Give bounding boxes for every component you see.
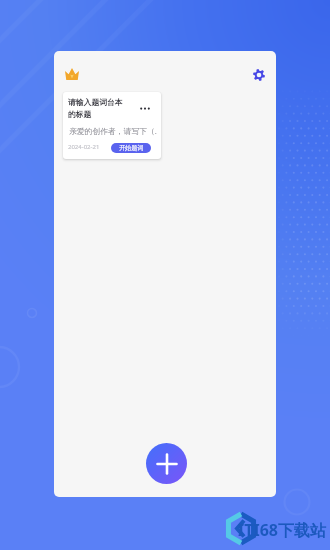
button[interactable]: Add script xyxy=(146,443,187,484)
button[interactable]: Settings xyxy=(248,64,269,85)
button[interactable]: More options xyxy=(137,102,153,114)
staticText: 2024-02-21 xyxy=(68,143,100,151)
button[interactable]: VIP xyxy=(61,64,82,84)
button[interactable]: 请输入题词台本的标题 xyxy=(63,92,161,159)
staticText: 亲爱的创作者，请写下（... xyxy=(69,126,157,137)
button[interactable]: 开始题词 xyxy=(111,143,151,153)
staticText: 请输入题词台本的标题 xyxy=(68,97,128,119)
staticText: ITI68下载站 xyxy=(238,519,326,541)
staticText: 开始题词 xyxy=(119,144,144,152)
